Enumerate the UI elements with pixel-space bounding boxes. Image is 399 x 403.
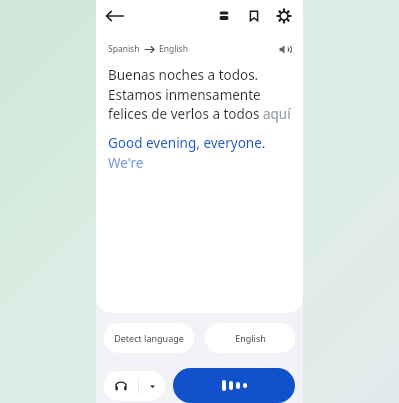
button[interactable]: Listening (173, 368, 295, 403)
button[interactable]: Listen (273, 38, 295, 60)
staticText: Spanish (108, 43, 140, 55)
staticText: Buenas noches a todos. Estamos inmensame… (108, 66, 291, 123)
button[interactable]: English (205, 323, 295, 353)
button[interactable]: Saved (241, 3, 267, 29)
button[interactable]: More options (139, 371, 165, 401)
button[interactable]: Detect language (104, 323, 194, 353)
staticText: Good evening, everyone. We're (108, 134, 291, 172)
button[interactable]: Back (102, 3, 128, 29)
button[interactable]: Settings (271, 3, 297, 29)
button[interactable]: Headphones (104, 371, 138, 401)
staticText: English (159, 43, 188, 55)
button[interactable]: Transcribe (211, 3, 237, 29)
staticText: Detect language (114, 332, 184, 344)
staticText: English (235, 332, 266, 344)
